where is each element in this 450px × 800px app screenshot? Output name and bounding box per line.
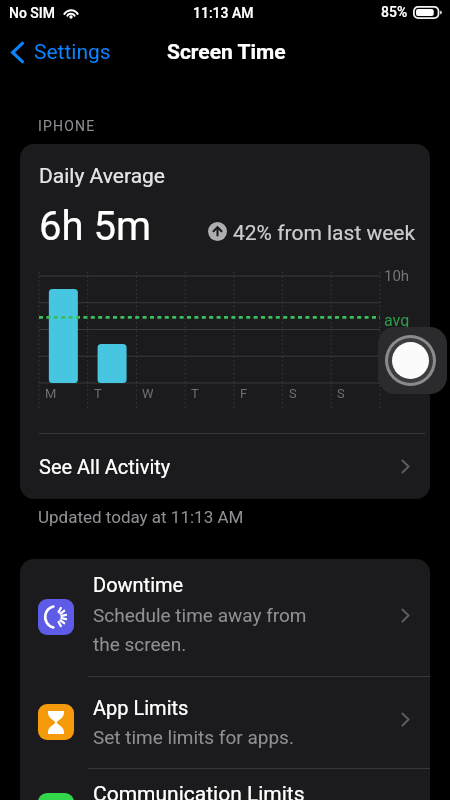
staticText: Set time limits for apps. xyxy=(93,726,294,748)
staticText: See All Activity xyxy=(39,455,171,478)
staticText: Settings xyxy=(34,40,111,65)
staticText: S xyxy=(289,386,297,401)
button[interactable]: See All Activity xyxy=(20,434,430,499)
staticText: T xyxy=(94,386,102,401)
staticText: 6h 5m xyxy=(39,203,151,250)
staticText: 85% xyxy=(381,4,408,20)
staticText: 10h xyxy=(384,267,410,285)
staticText: Updated today at 11:13 AM xyxy=(38,507,244,527)
staticText: 42% from last week xyxy=(233,221,416,246)
staticText: F xyxy=(240,386,248,401)
staticText: Screen Time xyxy=(167,40,286,65)
staticText: Schedule time away from the screen. xyxy=(93,604,307,655)
staticText: Downtime xyxy=(93,573,184,596)
staticText: App Limits xyxy=(93,696,189,719)
staticText: Communication Limits xyxy=(93,782,305,800)
button[interactable]: Downtime xyxy=(20,559,430,676)
button[interactable]: Settings xyxy=(9,38,113,67)
button[interactable]: AssistiveTouch xyxy=(378,327,447,394)
staticText: T xyxy=(191,386,199,401)
staticText: M xyxy=(45,386,57,401)
staticText: 11:13 AM xyxy=(193,5,254,21)
staticText: avg xyxy=(384,311,410,330)
staticText: S xyxy=(337,386,345,401)
staticText: W xyxy=(142,386,154,401)
button[interactable]: App Limits xyxy=(20,676,430,768)
staticText: Daily Average xyxy=(39,164,165,189)
staticText: IPHONE xyxy=(38,118,96,134)
button[interactable]: Communication Limits xyxy=(20,768,430,800)
staticText: No SIM xyxy=(9,5,56,21)
